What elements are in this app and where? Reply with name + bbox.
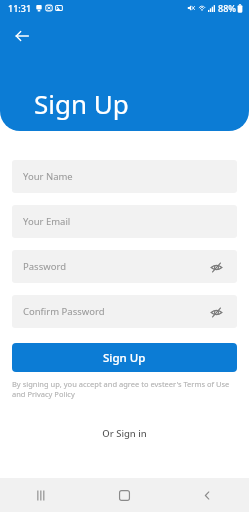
button[interactable]: Show password (206, 257, 226, 277)
staticText: 11:31 (8, 2, 32, 14)
staticText: Your Name (23, 170, 226, 183)
button[interactable]: Back (166, 478, 249, 512)
button[interactable]: Show password (206, 302, 226, 322)
staticText: Sign Up (34, 86, 129, 121)
staticText: Sign Up (103, 350, 146, 366)
staticText: Your Email (23, 215, 226, 228)
button[interactable]: Password (12, 250, 237, 283)
staticText: 88% (218, 2, 236, 14)
staticText: Password (23, 260, 206, 273)
button[interactable]: Confirm Password (12, 295, 237, 328)
staticText: Confirm Password (23, 305, 206, 318)
button[interactable]: Home (83, 478, 166, 512)
button[interactable]: Your Name (12, 160, 237, 193)
button[interactable]: Back (8, 22, 36, 50)
button[interactable]: Recent apps (0, 478, 83, 512)
staticText: By signing up, you accept and agree to e… (12, 379, 237, 399)
button[interactable]: Your Email (12, 205, 237, 238)
button[interactable]: Or Sign in (96, 424, 153, 443)
button[interactable]: Sign Up (12, 343, 237, 372)
staticText: Or Sign in (102, 427, 147, 440)
